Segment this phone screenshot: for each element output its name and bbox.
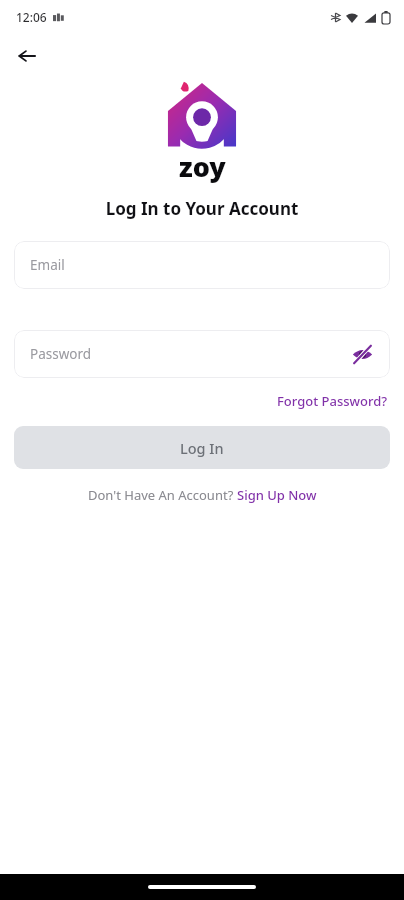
staticText: Don't Have An Account? bbox=[88, 486, 237, 504]
staticText: Forgot Password? bbox=[277, 392, 388, 410]
staticText: Log In bbox=[180, 438, 224, 458]
button[interactable]: Back bbox=[10, 39, 44, 73]
button[interactable]: Email bbox=[14, 241, 390, 289]
staticText: Password bbox=[30, 345, 92, 363]
button[interactable]: Log In bbox=[14, 426, 390, 469]
staticText: Sign Up Now bbox=[237, 486, 317, 504]
staticText: Log In to Your Account bbox=[0, 197, 404, 220]
button[interactable]: Password bbox=[14, 330, 390, 378]
staticText: zoy bbox=[179, 148, 226, 185]
button[interactable]: Show password bbox=[348, 340, 376, 368]
button[interactable]: Sign Up Now bbox=[237, 486, 317, 504]
staticText: 12:06 bbox=[16, 9, 47, 25]
button[interactable]: Forgot Password? bbox=[275, 390, 390, 412]
staticText: Email bbox=[30, 256, 65, 274]
